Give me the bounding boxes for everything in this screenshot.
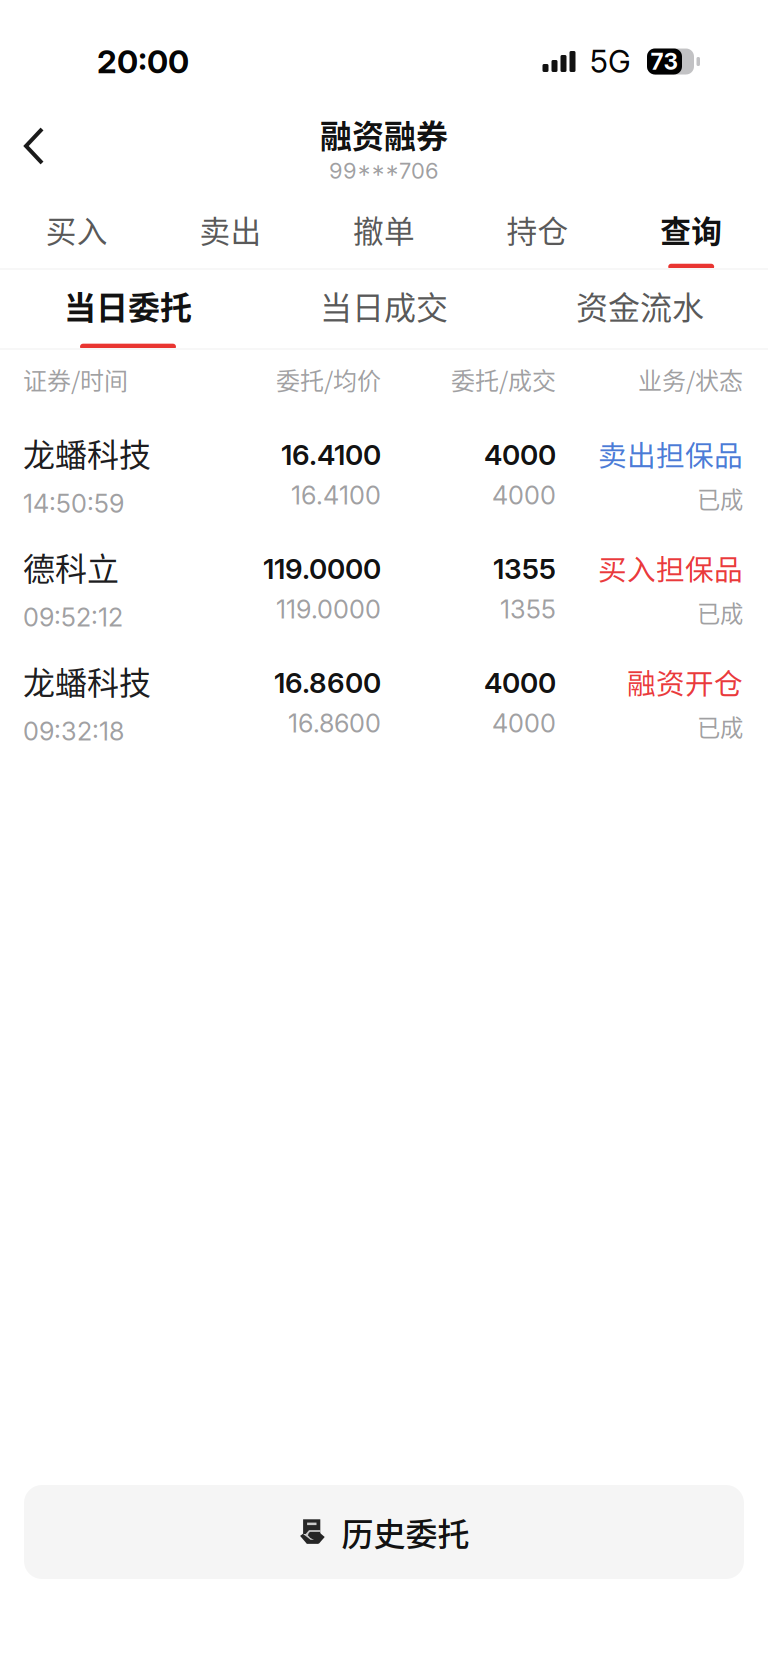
staticText: 委托/均价 [276,362,381,397]
staticText: 龙蟠科技 [23,658,151,704]
staticText: 09:32:18 [23,716,124,747]
staticText: 委托/成交 [451,362,556,397]
button[interactable]: 卖出 [154,203,307,268]
staticText: 查询 [660,207,722,252]
staticText: 14:50:59 [23,488,124,519]
button[interactable]: 买入 [0,203,154,268]
button[interactable]: 查询 [614,203,768,268]
staticText: 5G [590,43,631,80]
staticText: 证券/时间 [23,362,128,397]
button[interactable]: 当日委托 [0,270,256,348]
staticText: 119.0000 [276,594,381,624]
staticText: 德科立 [23,544,119,590]
button[interactable]: 龙蟠科技 [0,419,768,533]
staticText: 已成 [697,596,743,629]
staticText: 1355 [500,594,556,624]
button[interactable]: 当日成交 [256,270,512,348]
staticText: 4000 [492,480,556,511]
button[interactable]: 持仓 [461,203,614,268]
staticText: 1355 [493,552,556,586]
button[interactable]: 龙蟠科技 [0,647,768,761]
staticText: 业务/状态 [638,362,743,397]
staticText: 卖出 [199,207,261,252]
staticText: 卖出担保品 [598,433,743,475]
button[interactable]: 德科立 [0,533,768,647]
staticText: 持仓 [507,207,569,252]
staticText: 买入 [46,207,108,252]
staticText: 16.8600 [288,708,381,738]
staticText: 融资融券 [320,111,448,157]
staticText: 4000 [484,438,556,472]
staticText: 119.0000 [263,552,381,586]
button[interactable]: 撤单 [307,203,461,268]
staticText: 16.4100 [281,438,381,472]
staticText: 当日委托 [64,282,192,329]
staticText: 龙蟠科技 [23,430,151,476]
staticText: 16.4100 [291,480,381,511]
staticText: 09:52:12 [23,602,123,633]
button[interactable]: 历史委托 [24,1485,744,1579]
staticText: 已成 [697,710,743,743]
staticText: 买入担保品 [598,547,743,589]
staticText: 73 [650,48,678,75]
button[interactable]: 资金流水 [512,270,768,348]
staticText: 当日成交 [320,282,448,329]
staticText: 16.8600 [274,666,381,700]
staticText: 4000 [484,666,556,700]
staticText: 4000 [492,708,556,738]
staticText: 20:00 [97,42,189,81]
staticText: 撤单 [353,207,415,252]
staticText: 历史委托 [341,1509,469,1555]
staticText: 99***706 [329,157,439,184]
staticText: 资金流水 [576,282,704,329]
button[interactable]: Back [0,111,73,181]
staticText: 已成 [697,482,743,515]
staticText: 融资开仓 [627,661,743,703]
